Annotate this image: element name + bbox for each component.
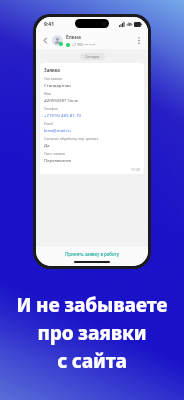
button[interactable]: More options: [134, 35, 144, 45]
staticText: Стандартная: [44, 82, 71, 88]
staticText: Имя: [44, 91, 52, 96]
staticText: И не забываете: [0, 292, 184, 318]
staticText: Тип заявки: [44, 76, 63, 81]
staticText: Перезвоните: [44, 157, 72, 163]
button[interactable]: Back: [40, 35, 50, 45]
staticText: #20550587 Гость: [44, 97, 79, 103]
staticText: 17:28: [131, 167, 140, 172]
button[interactable]: Заявка: [40, 63, 144, 174]
staticText: Заявка: [44, 67, 61, 73]
staticText: с сайта: [0, 348, 184, 374]
staticText: Сегодня: [85, 54, 100, 59]
staticText: +7 (916) 483-81-10: [44, 112, 82, 118]
staticText: Email: [44, 121, 53, 126]
staticText: про заявки: [0, 320, 184, 346]
staticText: +7 905 ••• ••-••: [72, 42, 96, 47]
button[interactable]: Принять заявку в работу: [36, 247, 148, 261]
staticText: Да: [44, 142, 50, 148]
staticText: Принять заявку в работу: [65, 251, 119, 257]
staticText: Елена: [66, 34, 81, 41]
staticText: lena@mail.ru: [44, 127, 71, 133]
staticText: Текст заявки: [44, 151, 65, 156]
staticText: 9:41: [44, 21, 54, 28]
staticText: Телефон: [44, 106, 59, 111]
staticText: Согласие обработку пер. данных: [44, 136, 99, 141]
